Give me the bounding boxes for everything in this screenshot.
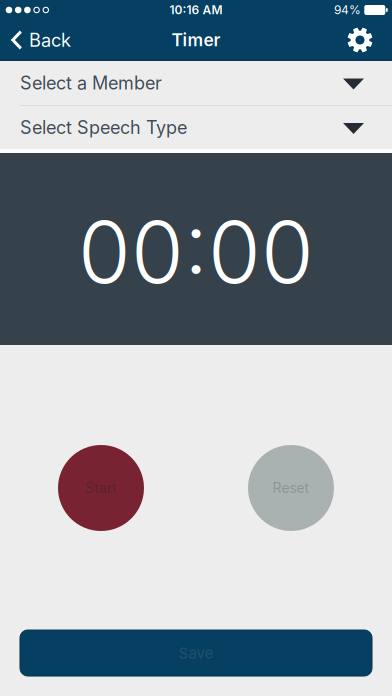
button[interactable]: Back [0, 29, 71, 51]
button[interactable]: Save [20, 630, 372, 676]
staticText: Save [178, 644, 213, 662]
staticText: Select Speech Type [20, 117, 187, 138]
staticText: Select a Member [20, 72, 162, 94]
button[interactable]: Select Speech Type [0, 106, 392, 149]
staticText: Reset [272, 479, 309, 496]
button[interactable]: Select a Member [0, 61, 392, 105]
staticText: Start [85, 479, 117, 496]
staticText: Timer [171, 29, 220, 50]
staticText: 00:00 [78, 200, 314, 304]
staticText: 10:16 AM [169, 3, 222, 17]
staticText: Back [29, 29, 71, 51]
button[interactable]: Start [58, 445, 144, 531]
button[interactable]: Settings [347, 27, 392, 53]
staticText: 94% [334, 3, 361, 17]
button[interactable]: Reset [248, 445, 334, 531]
